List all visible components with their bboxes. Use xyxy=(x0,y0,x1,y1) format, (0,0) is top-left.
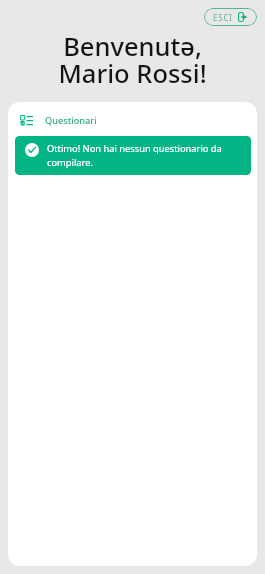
other: Esci xyxy=(238,12,247,22)
button[interactable]: Ottimo! Non hai nessun questionario da c… xyxy=(15,136,251,175)
staticText: Questionari xyxy=(45,114,97,127)
staticText: Ottimo! Non hai nessun questionario da c… xyxy=(47,142,241,169)
staticText: ESCI xyxy=(213,12,233,23)
button[interactable]: ESCI xyxy=(204,8,257,26)
staticText: Benvenutə, Mario Rossi! xyxy=(0,29,265,90)
